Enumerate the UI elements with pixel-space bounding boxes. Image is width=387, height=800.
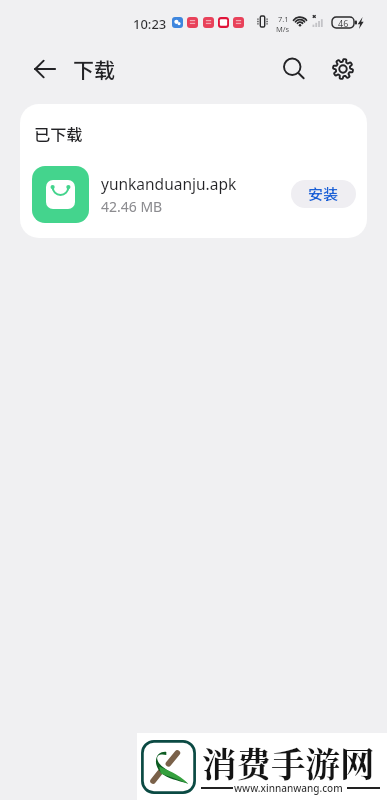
staticText: 46 [338, 17, 349, 28]
button[interactable]: Back [23, 47, 67, 91]
staticText: 下载 [73, 54, 115, 84]
staticText: yunkanduanju.apk [101, 173, 237, 194]
staticText: 安装 [308, 183, 339, 205]
button[interactable]: 安装 [291, 180, 356, 208]
staticText: 42.46 MB [101, 197, 163, 216]
staticText: 消费手游网 [202, 737, 375, 787]
staticText: 7.1 [278, 14, 289, 24]
staticText: 10:23 [133, 15, 167, 33]
staticText: www.xinnanwang.com [234, 781, 343, 795]
button[interactable]: Search [272, 47, 316, 91]
staticText: M/s [276, 24, 290, 34]
button[interactable]: Settings [321, 47, 365, 91]
button[interactable]: yunkanduanju.apk [20, 160, 367, 228]
staticText: 已下载 [34, 122, 83, 145]
